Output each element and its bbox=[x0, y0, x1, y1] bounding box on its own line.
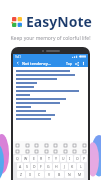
staticText: W bbox=[24, 156, 28, 161]
button[interactable]: Format tool 7 bbox=[72, 149, 76, 153]
staticText: P bbox=[83, 156, 86, 161]
button[interactable]: K bbox=[69, 163, 76, 170]
button[interactable]: V bbox=[45, 171, 54, 178]
button[interactable]: Share bbox=[74, 61, 79, 66]
button[interactable]: G bbox=[45, 163, 52, 170]
button[interactable]: Format tool 5 bbox=[53, 149, 57, 153]
button[interactable]: Format tool 5 bbox=[53, 143, 57, 147]
button[interactable]: Back bbox=[15, 60, 21, 66]
staticText: Not tendency... bbox=[22, 61, 51, 66]
staticText: E bbox=[33, 156, 35, 161]
button[interactable]: D bbox=[31, 163, 37, 170]
button[interactable]: Format tool 6 bbox=[63, 143, 67, 147]
staticText: X bbox=[29, 172, 32, 177]
button[interactable]: Format tool 2 bbox=[25, 143, 29, 147]
button[interactable]: Format tool 4 bbox=[44, 143, 48, 147]
staticText: R bbox=[40, 156, 43, 161]
button[interactable]: C bbox=[35, 171, 44, 178]
staticText: K bbox=[71, 164, 74, 169]
button[interactable]: S bbox=[24, 163, 30, 170]
other: EasyNote logo bbox=[10, 15, 24, 29]
staticText: I bbox=[69, 156, 71, 161]
staticText: D bbox=[33, 164, 36, 169]
staticText: F bbox=[40, 164, 42, 169]
staticText: Q bbox=[16, 156, 19, 161]
staticText: Y bbox=[55, 156, 57, 161]
button[interactable]: Z bbox=[17, 171, 25, 178]
button[interactable]: Format tool 2 bbox=[25, 149, 29, 153]
staticText: Z bbox=[20, 172, 23, 177]
button[interactable]: Format tool 3 bbox=[34, 143, 38, 147]
button[interactable]: Format tool 6 bbox=[63, 149, 67, 153]
button[interactable]: O bbox=[74, 155, 80, 162]
staticText: A bbox=[19, 164, 22, 169]
button[interactable]: Format tool 8 bbox=[82, 149, 86, 153]
button[interactable]: R bbox=[38, 155, 45, 162]
button[interactable]: P bbox=[81, 155, 87, 162]
button[interactable]: Format tool 7 bbox=[72, 143, 76, 147]
staticText: O bbox=[76, 156, 79, 161]
button[interactable]: Format tool 1 bbox=[15, 149, 19, 153]
staticText: H bbox=[55, 164, 58, 169]
button[interactable]: M bbox=[75, 171, 84, 178]
button[interactable]: 9:41 bbox=[11, 47, 90, 180]
staticText: T bbox=[48, 156, 50, 161]
button[interactable]: Format tool 8 bbox=[82, 143, 86, 147]
button[interactable]: I bbox=[67, 155, 73, 162]
button[interactable]: W bbox=[22, 155, 29, 162]
button[interactable]: Format tool 1 bbox=[15, 143, 19, 147]
button[interactable]: A bbox=[17, 163, 23, 170]
button[interactable]: Y bbox=[53, 155, 59, 162]
button[interactable]: EasyNote logo bbox=[8, 12, 94, 31]
staticText: U bbox=[62, 156, 65, 161]
button[interactable]: Q bbox=[14, 155, 21, 162]
staticText: Keep your memory of colorful life! bbox=[0, 35, 101, 42]
staticText: M bbox=[78, 172, 82, 177]
staticText: J bbox=[64, 164, 65, 169]
button[interactable]: U bbox=[60, 155, 66, 162]
button[interactable]: More options bbox=[81, 61, 86, 66]
button[interactable]: Format tool 4 bbox=[44, 149, 48, 153]
button[interactable]: E bbox=[30, 155, 37, 162]
button[interactable]: B bbox=[55, 171, 64, 178]
staticText: N bbox=[68, 172, 71, 177]
button[interactable]: N bbox=[65, 171, 74, 178]
staticText: Top bbox=[66, 61, 72, 66]
staticText: EasyNote bbox=[26, 12, 92, 31]
staticText: B bbox=[58, 172, 61, 177]
button[interactable]: J bbox=[61, 163, 68, 170]
button[interactable]: X bbox=[26, 171, 34, 178]
button[interactable]: Format tool 3 bbox=[34, 149, 38, 153]
button[interactable]: H bbox=[53, 163, 60, 170]
button[interactable]: F bbox=[38, 163, 44, 170]
staticText: G bbox=[47, 164, 50, 169]
button[interactable] bbox=[13, 67, 88, 141]
button[interactable]: L bbox=[77, 163, 84, 170]
staticText: L bbox=[80, 164, 82, 169]
button[interactable]: T bbox=[46, 155, 52, 162]
staticText: 9:41 bbox=[15, 55, 21, 59]
staticText: S bbox=[26, 164, 28, 169]
staticText: C bbox=[38, 172, 41, 177]
staticText: V bbox=[48, 172, 51, 177]
